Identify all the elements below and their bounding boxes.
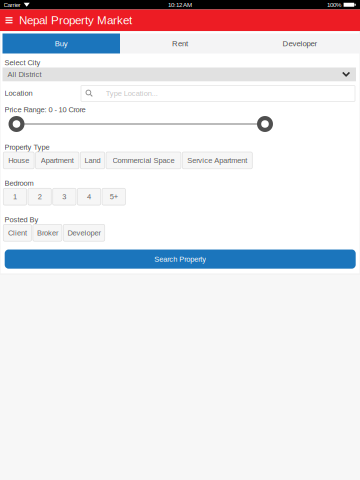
button[interactable]: Apartment [35, 152, 79, 169]
staticText: 1 [13, 192, 17, 201]
staticText: 5+ [110, 192, 118, 201]
staticText: Search Property [154, 255, 206, 263]
button[interactable]: Rent [120, 33, 240, 53]
staticText: Rent [172, 39, 188, 48]
button[interactable]: Type Location... [81, 85, 355, 101]
button[interactable]: Search Property [5, 249, 356, 269]
staticText: Posted By [4, 215, 38, 224]
staticText: 100% [327, 1, 341, 8]
button[interactable]: House [3, 152, 34, 169]
staticText: Bedroom [4, 179, 33, 187]
staticText: 2 [38, 192, 42, 201]
button[interactable]: Service Apartment [182, 152, 252, 169]
button[interactable]: Developer [240, 33, 360, 53]
staticText: Land [84, 156, 100, 164]
staticText: Location [4, 89, 32, 97]
staticText: Price Range: 0 - 10 Crore [4, 105, 85, 114]
button[interactable]: Broker [33, 224, 62, 241]
staticText: 4 [87, 192, 91, 201]
staticText: Carrier [3, 1, 20, 8]
button[interactable]: Land [80, 152, 105, 169]
button[interactable]: 4 [77, 188, 101, 205]
staticText: Apartment [41, 156, 74, 164]
staticText: Service Apartment [187, 156, 247, 164]
button[interactable]: All District [2, 67, 356, 81]
staticText: Property Type [4, 143, 49, 151]
button[interactable]: Open menu [0, 10, 19, 31]
staticText: Buy [55, 39, 68, 48]
button[interactable]: Buy [2, 33, 120, 53]
staticText: Client [8, 229, 27, 237]
staticText: House [8, 156, 29, 164]
staticText: Type Location... [106, 89, 158, 98]
staticText: All District [7, 70, 41, 78]
button[interactable]: Commercial Space [106, 152, 181, 169]
staticText: Broker [37, 229, 58, 237]
button[interactable]: Client [3, 224, 31, 241]
button[interactable]: 5+ [102, 188, 125, 205]
button[interactable]: Developer [63, 224, 105, 241]
staticText: Nepal Property Market [19, 14, 132, 27]
staticText: Commercial Space [112, 156, 174, 164]
button[interactable]: 3 [53, 188, 76, 205]
staticText: 10:12 AM [168, 1, 192, 8]
button[interactable]: 1 [3, 188, 27, 205]
staticText: Developer [67, 229, 100, 237]
staticText: Developer [282, 39, 317, 48]
staticText: Select City [4, 58, 40, 67]
button[interactable]: 2 [28, 188, 51, 205]
staticText: 3 [62, 192, 66, 201]
